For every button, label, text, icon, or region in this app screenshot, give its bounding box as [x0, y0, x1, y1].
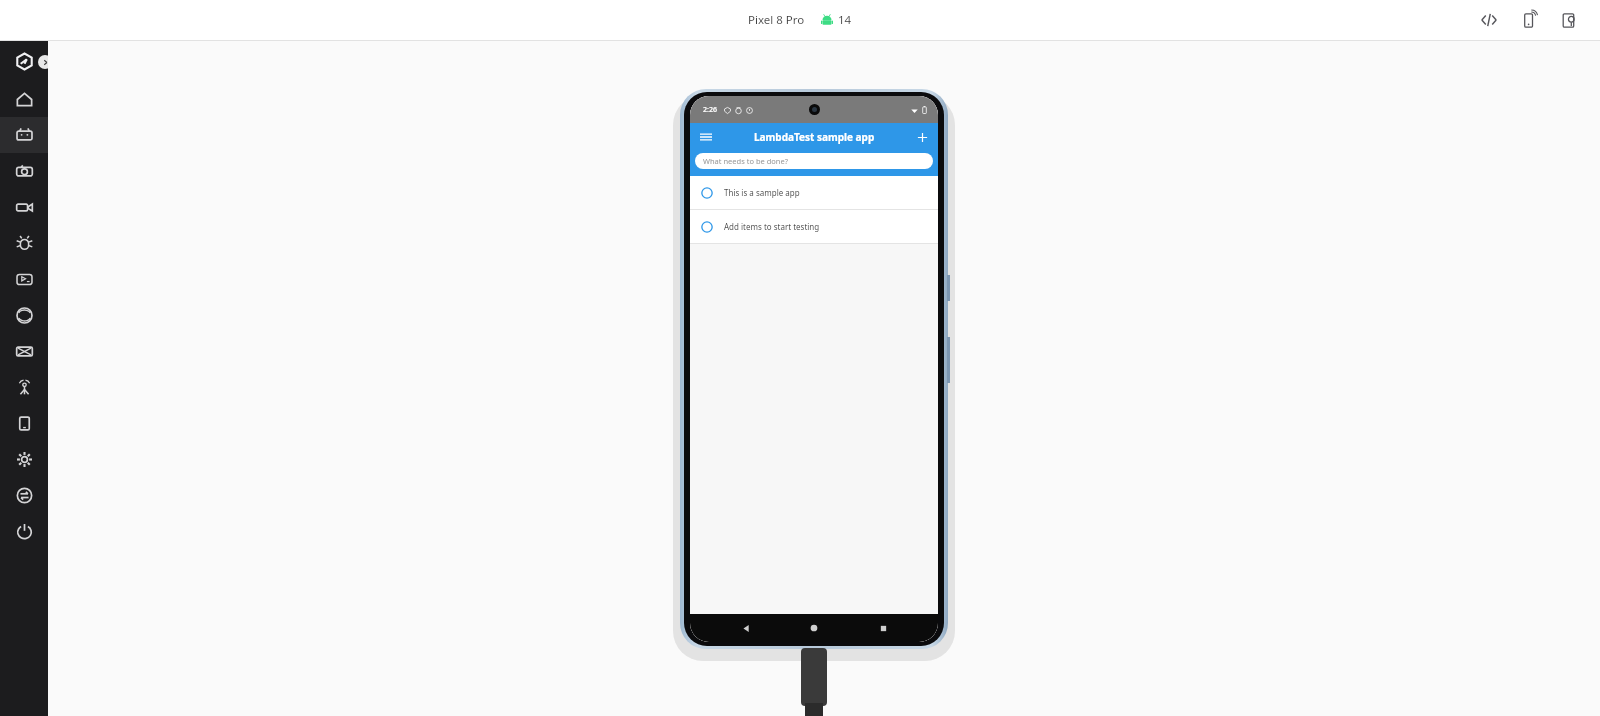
button[interactable]: Tool 8 [0, 369, 48, 405]
button[interactable]: Tool 0 [0, 81, 48, 117]
button[interactable]: Back [733, 615, 759, 641]
button[interactable]: Tool 3 [0, 189, 48, 225]
button[interactable]: Recents [870, 615, 896, 641]
button[interactable]: Tool 6 [0, 297, 48, 333]
button[interactable]: This is a sample app [690, 176, 938, 209]
button[interactable]: Tool 2 [0, 153, 48, 189]
button[interactable]: Home [801, 615, 827, 641]
button[interactable]: Add [911, 126, 933, 148]
staticText: Add items to start testing [724, 221, 820, 232]
button[interactable]: Tool 5 [0, 261, 48, 297]
button[interactable]: Tool 11 [0, 477, 48, 513]
staticText: 14 [838, 12, 852, 28]
staticText: This is a sample app [724, 187, 800, 198]
button[interactable]: Tool 1 [0, 117, 48, 153]
staticText: LambdaTest sample app [754, 130, 875, 144]
button[interactable]: Tool 9 [0, 405, 48, 441]
button[interactable]: What needs to be done? [695, 153, 933, 169]
staticText: Pixel 8 Pro [748, 12, 805, 28]
button[interactable]: Running Devices [6, 43, 42, 79]
button[interactable]: Tool 10 [0, 441, 48, 477]
button[interactable]: Expand [38, 55, 52, 69]
button[interactable]: Tool 12 [0, 513, 48, 549]
button[interactable]: Inspect device [1554, 5, 1584, 35]
button[interactable]: Tool 4 [0, 225, 48, 261]
staticText: What needs to be done? [703, 156, 788, 166]
button[interactable]: Tool 7 [0, 333, 48, 369]
staticText: 2:26 [703, 105, 717, 115]
button[interactable]: View source [1474, 5, 1504, 35]
button[interactable]: Menu [695, 126, 717, 148]
button[interactable]: Device streaming [1514, 5, 1544, 35]
button[interactable]: Add items to start testing [690, 210, 938, 243]
